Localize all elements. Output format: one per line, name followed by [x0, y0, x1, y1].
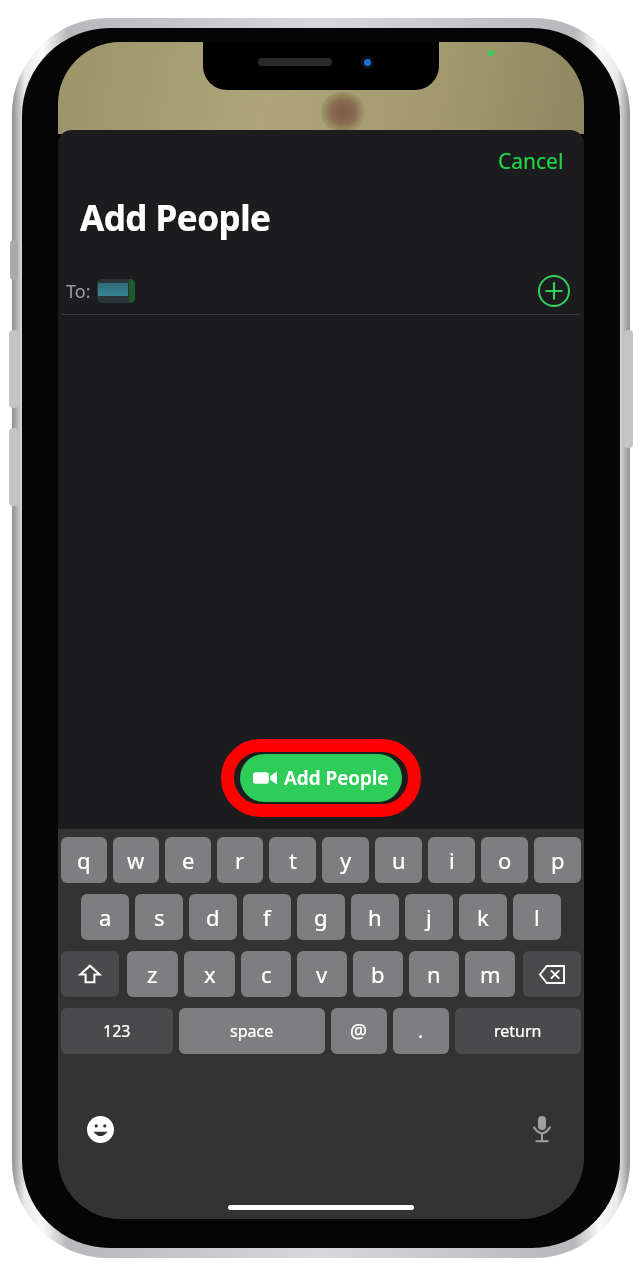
- button[interactable]: Dictation: [522, 1109, 562, 1149]
- button[interactable]: Add contact: [532, 269, 576, 313]
- staticText: r: [235, 845, 245, 875]
- staticText: m: [480, 959, 501, 989]
- button[interactable]: space: [179, 1008, 325, 1054]
- staticText: i: [449, 845, 455, 875]
- button[interactable]: h: [351, 894, 399, 940]
- button[interactable]: j: [405, 894, 453, 940]
- staticText: g: [314, 902, 328, 932]
- button[interactable]: b: [353, 951, 403, 997]
- staticText: w: [127, 845, 145, 875]
- button[interactable]: x: [184, 951, 235, 997]
- staticText: u: [392, 845, 406, 875]
- button[interactable]: g: [297, 894, 345, 940]
- staticText: b: [371, 959, 385, 989]
- button[interactable]: r: [217, 837, 263, 883]
- staticText: space: [230, 1020, 274, 1042]
- button[interactable]: n: [409, 951, 459, 997]
- button[interactable]: a: [81, 894, 129, 940]
- staticText: s: [154, 902, 165, 932]
- staticText: @: [350, 1018, 368, 1044]
- button[interactable]: c: [241, 951, 291, 997]
- button[interactable]: p: [534, 837, 581, 883]
- button[interactable]: v: [297, 951, 347, 997]
- staticText: v: [316, 959, 328, 989]
- staticText: e: [182, 845, 195, 875]
- button[interactable]: Shift: [61, 951, 119, 997]
- button[interactable]: t: [269, 837, 316, 883]
- button[interactable]: Cancel: [478, 137, 584, 186]
- button[interactable]: Emoji keyboard: [80, 1109, 120, 1149]
- staticText: c: [261, 959, 272, 989]
- staticText: return: [494, 1020, 542, 1042]
- staticText: f: [263, 902, 271, 932]
- staticText: x: [204, 959, 216, 989]
- button[interactable]: q: [61, 837, 107, 883]
- button[interactable]: Delete: [523, 951, 581, 997]
- staticText: Add People: [80, 194, 271, 242]
- staticText: n: [427, 959, 441, 989]
- button[interactable]: m: [465, 951, 515, 997]
- button[interactable]: s: [135, 894, 183, 940]
- button[interactable]: w: [113, 837, 159, 883]
- button[interactable]: 123: [61, 1008, 173, 1054]
- staticText: Cancel: [498, 147, 564, 176]
- button[interactable]: k: [459, 894, 507, 940]
- button[interactable]: o: [481, 837, 528, 883]
- staticText: o: [498, 845, 512, 875]
- staticText: z: [147, 959, 158, 989]
- staticText: p: [551, 845, 565, 875]
- button[interactable]: e: [165, 837, 211, 883]
- button[interactable]: i: [428, 837, 475, 883]
- button[interactable]: y: [322, 837, 369, 883]
- button[interactable]: return: [455, 1008, 581, 1054]
- button[interactable]: l: [513, 894, 561, 940]
- staticText: d: [206, 902, 220, 932]
- staticText: l: [534, 902, 540, 932]
- staticText: t: [289, 845, 297, 875]
- button[interactable]: @: [331, 1008, 387, 1054]
- staticText: 123: [103, 1020, 131, 1042]
- staticText: q: [77, 845, 91, 875]
- button[interactable]: Add People: [240, 754, 402, 802]
- staticText: To:: [66, 279, 91, 304]
- button[interactable]: u: [375, 837, 422, 883]
- button[interactable]: .: [393, 1008, 449, 1054]
- staticText: .: [418, 1018, 424, 1044]
- staticText: k: [477, 902, 489, 932]
- button[interactable]: f: [243, 894, 291, 940]
- staticText: a: [99, 902, 112, 932]
- button[interactable]: d: [189, 894, 237, 940]
- staticText: Add People: [284, 765, 389, 791]
- staticText: y: [340, 845, 352, 875]
- staticText: h: [368, 902, 382, 932]
- button[interactable]: z: [127, 951, 178, 997]
- staticText: j: [426, 902, 432, 932]
